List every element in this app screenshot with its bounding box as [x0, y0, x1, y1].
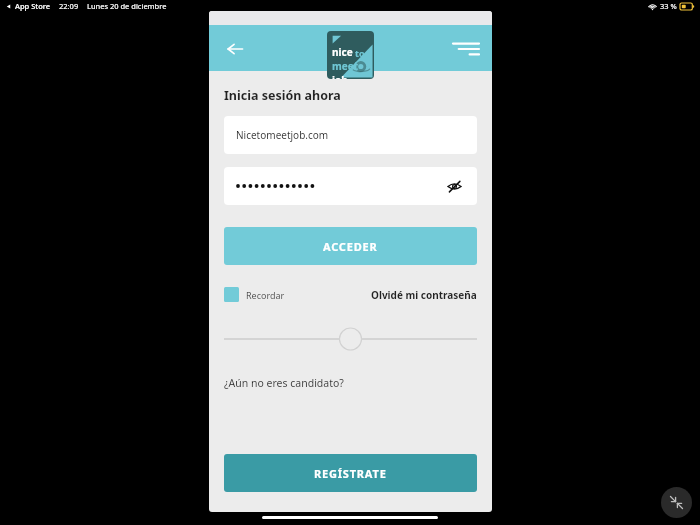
staticText: 33 % [660, 1, 677, 11]
staticText: ACCEDER [323, 239, 378, 254]
button[interactable]: Show password [224, 167, 477, 205]
staticText: Nicetomeetjob.com [236, 128, 329, 142]
staticText: Lunes 20 de diciembre [87, 1, 167, 11]
button[interactable]: Recordar [224, 287, 285, 302]
button[interactable]: Shrink window [661, 487, 692, 518]
button[interactable]: REGÍSTRATE [224, 454, 477, 492]
staticText: App Store [15, 1, 51, 11]
staticText: job [332, 73, 348, 79]
button[interactable]: Back [215, 29, 255, 69]
button[interactable]: ACCEDER [224, 227, 477, 265]
staticText: ¿Aún no eres candidato? [224, 376, 344, 390]
button[interactable]: Show password [443, 175, 465, 197]
button[interactable]: Menu [446, 29, 486, 69]
staticText: Recordar [246, 289, 285, 301]
button[interactable]: Slider [224, 326, 477, 352]
button[interactable]: Olvidé mi contraseña [371, 288, 477, 302]
button[interactable]: nice to meet job logo [327, 31, 374, 79]
staticText: meet [332, 59, 359, 73]
button[interactable]: Nicetomeetjob.com [224, 116, 477, 154]
staticText: nice [332, 45, 353, 59]
staticText: Inicia sesión ahora [224, 87, 341, 104]
staticText: 22:09 [59, 1, 79, 11]
staticText: Olvidé mi contraseña [371, 288, 477, 302]
staticText: to [355, 47, 365, 59]
staticText: REGÍSTRATE [314, 466, 387, 481]
